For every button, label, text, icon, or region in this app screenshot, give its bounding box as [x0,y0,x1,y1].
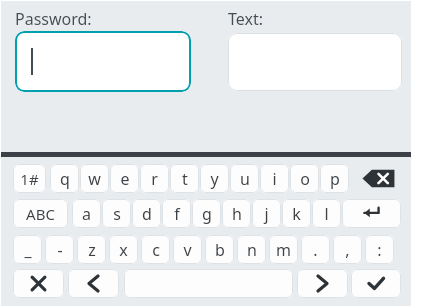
button[interactable]: r [140,164,169,193]
button[interactable]: . [301,235,330,264]
staticText: u [240,168,250,190]
staticText: y [210,168,219,190]
button[interactable]: s [102,199,131,228]
button[interactable]: Cancel [13,269,64,298]
staticText: n [247,239,257,261]
button[interactable]: : [365,235,394,264]
button[interactable]: b [205,235,234,264]
staticText: j [264,203,269,225]
staticText: b [215,239,225,261]
staticText: a [82,203,91,225]
button[interactable]: v [173,235,202,264]
button[interactable]: w [80,164,109,193]
button[interactable]: - [45,235,74,264]
staticText: 1# [20,169,39,189]
staticText: x [119,239,128,261]
staticText: d [142,203,152,225]
staticText: Password: [15,8,92,30]
button[interactable]: Done [351,269,401,298]
button[interactable]: x [109,235,138,264]
button[interactable]: q [50,164,79,193]
button[interactable]: ABC [13,199,68,228]
staticText: Text: [228,8,264,30]
staticText: v [183,239,192,261]
staticText: h [232,203,242,225]
button[interactable]: Previous [68,269,119,298]
button[interactable]: d [132,199,161,228]
staticText: , [345,239,350,261]
button[interactable]: y [200,164,229,193]
staticText: t [182,168,188,190]
button[interactable]: Next [297,269,348,298]
button[interactable]: Space [124,269,293,298]
staticText: k [292,203,301,225]
staticText: q [60,168,70,190]
staticText: i [272,168,277,190]
button[interactable]: n [237,235,266,264]
button[interactable]: _ [13,235,42,264]
button[interactable]: z [77,235,106,264]
staticText: l [324,203,329,225]
staticText: g [202,203,212,225]
staticText: - [57,239,63,261]
staticText: z [88,239,96,261]
button[interactable]: l [312,199,341,228]
button[interactable]: m [269,235,298,264]
button[interactable]: a [72,199,101,228]
staticText: w [88,168,101,190]
button[interactable]: k [282,199,311,228]
button[interactable]: i [260,164,289,193]
button[interactable]: h [222,199,251,228]
staticText: m [276,239,291,261]
staticText: ABC [26,204,55,224]
button[interactable]: g [192,199,221,228]
button[interactable]: , [333,235,362,264]
button[interactable]: p [320,164,349,193]
button[interactable]: Backspace [354,164,401,193]
button[interactable]: f [162,199,191,228]
staticText: s [113,203,121,225]
button[interactable] [228,33,402,91]
staticText: r [151,168,158,190]
staticText: . [313,239,318,261]
button[interactable]: j [252,199,281,228]
staticText: c [152,239,160,261]
button[interactable]: 1# [13,164,46,193]
button[interactable] [15,31,191,92]
staticText: _ [24,239,32,261]
button[interactable]: u [230,164,259,193]
button[interactable]: c [141,235,170,264]
button[interactable]: t [170,164,199,193]
button[interactable]: o [290,164,319,193]
staticText: p [330,168,340,190]
staticText: o [300,168,310,190]
staticText: : [377,239,382,261]
button[interactable]: Enter [342,199,401,228]
staticText: f [174,203,180,225]
staticText: e [120,168,130,190]
button[interactable]: e [110,164,139,193]
